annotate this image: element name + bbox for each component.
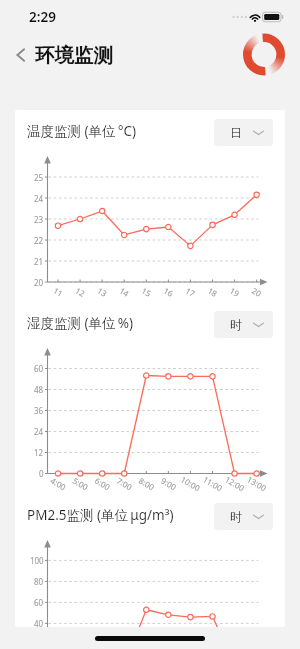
button[interactable]: Back [9,42,35,68]
staticText: 时 [230,317,242,332]
staticText: 环境监测 [35,43,113,68]
staticText: 温度监测 (单位 °C) [27,122,137,140]
staticText: 时 [230,509,242,524]
button[interactable]: 时 [214,503,273,530]
staticText: 2:29 [29,8,56,26]
staticText: 湿度监测 (单位 %) [27,314,134,332]
button[interactable]: 日 [214,119,273,146]
button[interactable]: 时 [214,311,273,338]
staticText: 日 [230,125,242,140]
staticText: PM2.5监测 (单位 μg/m³) [27,506,174,524]
button[interactable]: Refresh [243,34,285,75]
